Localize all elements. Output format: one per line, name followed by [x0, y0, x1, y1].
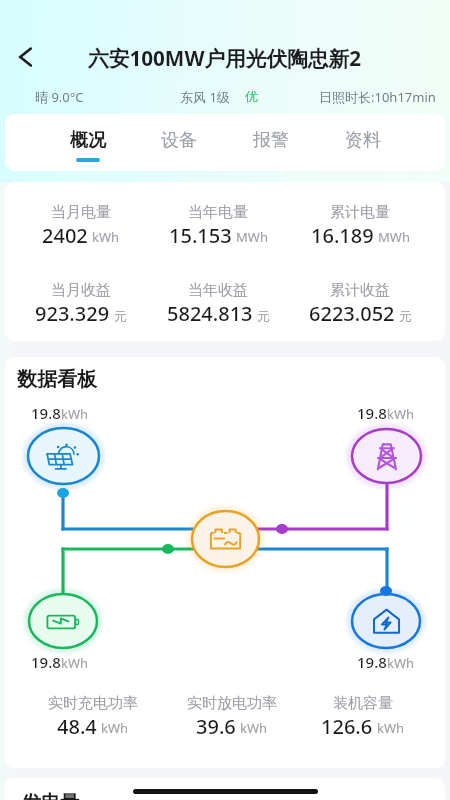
staticText: 6223.052: [309, 300, 395, 327]
staticText: 累计收益: [330, 281, 390, 300]
button[interactable]: 设备: [132, 114, 225, 171]
staticText: kWh: [387, 654, 415, 672]
staticText: MWh: [378, 228, 410, 246]
staticText: 19.8: [357, 652, 387, 672]
staticText: kWh: [101, 719, 129, 737]
staticText: 当月收益: [51, 281, 111, 300]
staticText: 15.153: [169, 222, 232, 249]
staticText: 19.8: [31, 403, 61, 423]
button[interactable]: 当月电量: [11, 203, 151, 255]
staticText: 六安100MW户用光伏陶忠新2: [88, 44, 362, 72]
staticText: 优: [245, 88, 258, 104]
staticText: kWh: [387, 405, 415, 423]
staticText: 当年收益: [188, 281, 248, 300]
staticText: 实时充电功率: [48, 694, 138, 713]
staticText: 元: [399, 308, 412, 324]
staticText: 16.189: [311, 222, 374, 249]
staticText: 19.8: [357, 403, 387, 423]
staticText: 资料: [345, 129, 381, 152]
staticText: 元: [114, 308, 127, 324]
button[interactable]: 当年电量: [148, 203, 288, 255]
staticText: 实时放电功率: [187, 694, 277, 713]
button[interactable]: 概况: [41, 114, 134, 171]
staticText: 39.6: [196, 713, 236, 740]
staticText: 元: [257, 308, 270, 324]
button[interactable]: 报警: [224, 114, 317, 171]
staticText: 数据看板: [17, 367, 97, 392]
staticText: MWh: [236, 228, 268, 246]
staticText: kWh: [61, 654, 89, 672]
staticText: 日照时长:10h17min: [319, 88, 436, 106]
staticText: 发电量: [22, 791, 79, 800]
staticText: 报警: [253, 129, 289, 152]
staticText: 装机容量: [333, 694, 393, 713]
button[interactable]: 装机容量: [293, 694, 433, 746]
staticText: 923.329: [35, 300, 110, 327]
staticText: kWh: [61, 405, 89, 423]
staticText: 当月电量: [51, 203, 111, 222]
staticText: kWh: [92, 228, 120, 246]
button[interactable]: 实时充电功率: [23, 694, 163, 746]
staticText: 概况: [70, 129, 106, 152]
staticText: kWh: [377, 719, 405, 737]
staticText: 5824.813: [167, 300, 253, 327]
staticText: 设备: [161, 129, 197, 152]
button[interactable]: 资料: [316, 114, 409, 171]
staticText: 19.8: [31, 652, 61, 672]
button[interactable]: 实时放电功率: [162, 694, 302, 746]
button[interactable]: 当月收益: [11, 281, 151, 333]
staticText: 126.6: [321, 713, 373, 740]
button[interactable]: 当年收益: [148, 281, 288, 333]
button[interactable]: 累计电量: [290, 203, 430, 255]
staticText: 东风 1级: [180, 88, 230, 106]
button[interactable]: 累计收益: [290, 281, 430, 333]
staticText: kWh: [240, 719, 268, 737]
button[interactable]: Back: [0, 33, 54, 81]
staticText: 累计电量: [330, 203, 390, 222]
staticText: 当年电量: [188, 203, 248, 222]
staticText: 2402: [42, 222, 88, 249]
staticText: 48.4: [57, 713, 97, 740]
staticText: 晴 9.0°C: [35, 88, 84, 106]
